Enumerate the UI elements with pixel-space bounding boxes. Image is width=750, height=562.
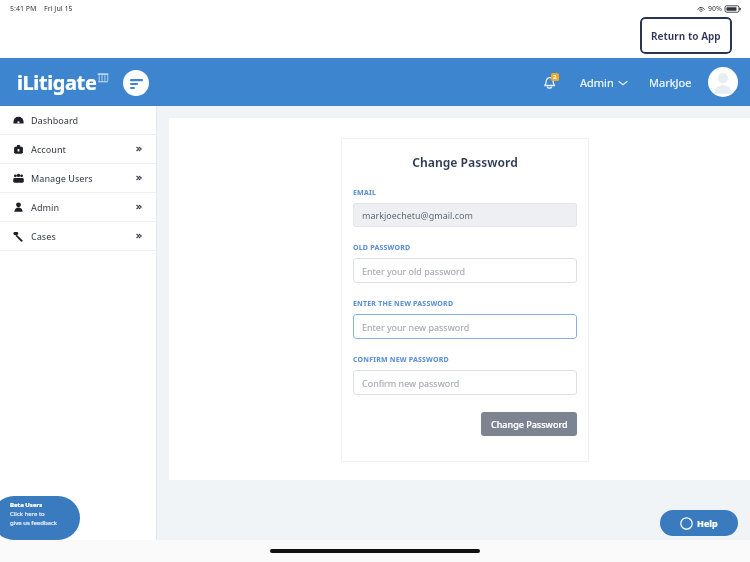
button[interactable]: Beta Users (0, 496, 80, 540)
button[interactable]: Change Password (481, 412, 577, 436)
staticText: Return to App (651, 29, 721, 43)
button[interactable]: iLitigate (17, 69, 109, 96)
staticText: EMAIL (353, 188, 377, 198)
staticText: Admin (580, 75, 614, 90)
button[interactable]: Admin (0, 193, 156, 221)
staticText: 2 (553, 73, 557, 81)
staticText: Dashboard (31, 114, 79, 126)
staticText: iLitigate (17, 69, 97, 96)
staticText: Help (697, 517, 718, 529)
button[interactable]: Notifications (536, 69, 562, 95)
staticText: Click here to (10, 510, 45, 518)
staticText: Enter your new password (362, 321, 470, 333)
button[interactable]: Enter your old password (353, 258, 577, 283)
staticText: markjoechetu@gmail.com (362, 209, 473, 221)
button[interactable]: Admin (580, 75, 627, 90)
staticText: MarkJoe (649, 75, 692, 90)
staticText: Confirm new password (362, 377, 460, 389)
staticText: Change Password (491, 418, 568, 430)
staticText: Account (31, 143, 66, 155)
button[interactable]: Manage Users (0, 164, 156, 192)
staticText: 90% (708, 4, 722, 14)
staticText: Admin (31, 201, 60, 213)
button[interactable]: Cases (0, 222, 156, 250)
button[interactable]: Confirm new password (353, 370, 577, 395)
button[interactable]: MarkJoe (649, 75, 692, 90)
button[interactable]: Enter your new password (353, 314, 577, 339)
staticText: CONFIRM NEW PASSWORD (353, 355, 449, 365)
button[interactable]: Help (660, 510, 738, 536)
staticText: 5:41 PM (10, 4, 37, 14)
staticText: Manage Users (31, 172, 93, 184)
staticText: OLD PASSWORD (353, 243, 411, 253)
button[interactable]: Account (0, 135, 156, 163)
staticText: Fri Jul 15 (44, 4, 73, 14)
button[interactable]: Menu (123, 70, 149, 96)
staticText: ENTER THE NEW PASSWORD (353, 299, 454, 309)
staticText: Beta Users (10, 501, 43, 509)
button[interactable]: Profile (708, 67, 738, 97)
button[interactable]: Dashboard (0, 106, 156, 134)
staticText: Cases (31, 230, 56, 242)
staticText: Change Password (353, 154, 577, 170)
button[interactable]: Return to App (640, 17, 732, 54)
staticText: give us feedback (10, 519, 58, 527)
staticText: Enter your old password (362, 265, 466, 277)
